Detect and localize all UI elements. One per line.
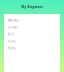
button[interactable]: Bell (4, 31, 60, 38)
staticText: Chimes (8, 26, 18, 29)
staticText: Marimba (8, 19, 18, 22)
staticText: Bell (8, 33, 14, 36)
staticText: My Ringtones (21, 5, 42, 9)
button[interactable]: Chimes (4, 24, 60, 31)
button[interactable]: Pulse (4, 38, 60, 45)
staticText: Retro (8, 47, 16, 50)
staticText: Pulse (8, 40, 16, 43)
button[interactable]: Retro (4, 45, 60, 52)
button[interactable]: Marimba (4, 17, 60, 24)
